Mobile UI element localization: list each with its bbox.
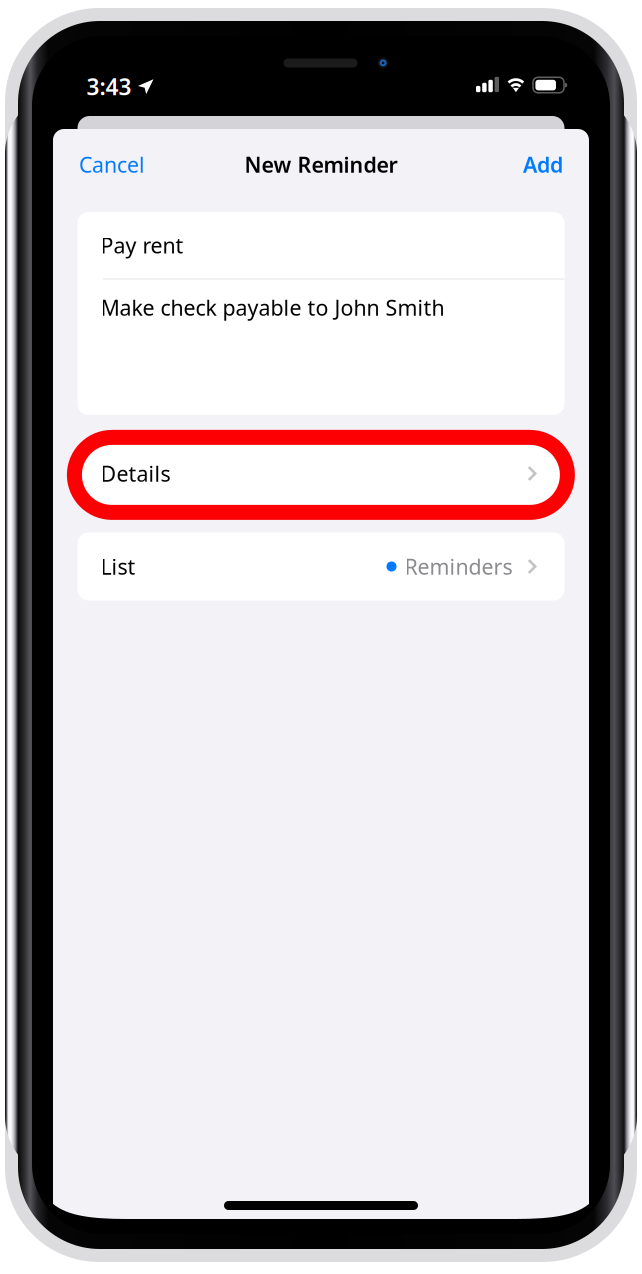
staticText: Reminders bbox=[404, 552, 512, 581]
button[interactable]: List bbox=[77, 532, 564, 600]
staticText: Pay rent bbox=[100, 231, 183, 259]
staticText: Cancel bbox=[79, 150, 145, 179]
staticText: Add bbox=[523, 150, 563, 179]
button[interactable]: Add bbox=[515, 139, 571, 190]
staticText: 3:43 bbox=[86, 71, 131, 101]
button[interactable]: Details bbox=[77, 438, 564, 508]
staticText: Details bbox=[100, 459, 170, 488]
staticText: List bbox=[100, 552, 135, 581]
button[interactable]: Cancel bbox=[71, 139, 153, 190]
staticText: Make check payable to John Smith bbox=[100, 293, 444, 322]
staticText: New Reminder bbox=[244, 150, 397, 179]
